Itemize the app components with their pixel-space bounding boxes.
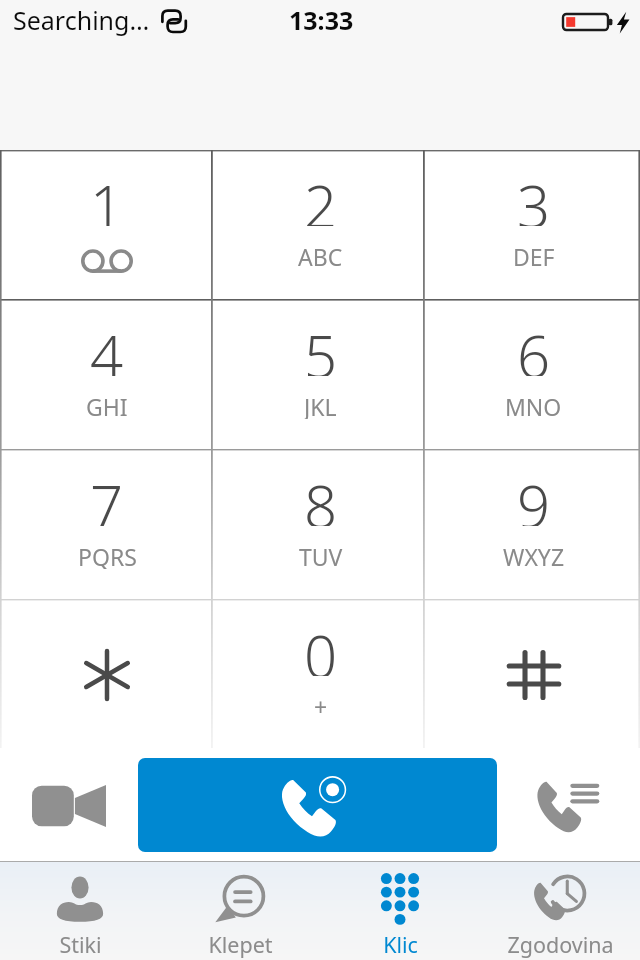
button[interactable] <box>0 600 214 750</box>
staticText: DEF <box>513 241 555 269</box>
button[interactable]: Stiki <box>0 862 160 960</box>
button[interactable]: 7 <box>0 450 214 600</box>
staticText: 5 <box>304 316 338 376</box>
button[interactable]: 9 <box>427 450 640 600</box>
button[interactable]: 8 <box>214 450 427 600</box>
button[interactable]: 4 <box>0 300 214 450</box>
staticText: 9 <box>517 466 551 526</box>
staticText: 3 <box>517 166 551 226</box>
staticText: + <box>314 691 328 719</box>
staticText: PQRS <box>78 541 137 569</box>
staticText: 1 <box>90 166 124 226</box>
staticText: 7 <box>90 466 124 526</box>
button[interactable]: Zgodovina <box>480 862 640 960</box>
staticText: 8 <box>304 466 338 526</box>
button[interactable]: Klic <box>320 862 480 960</box>
button[interactable]: 0 <box>214 600 427 750</box>
staticText: ABC <box>298 241 343 269</box>
staticText: TUV <box>299 541 343 569</box>
button[interactable]: Call <box>138 758 497 852</box>
staticText: GHI <box>86 391 128 419</box>
staticText: 6 <box>517 316 551 376</box>
staticText: Searching… <box>13 3 150 37</box>
button[interactable]: 6 <box>427 300 640 450</box>
button[interactable]: 3 <box>427 150 640 300</box>
staticText: JKL <box>304 391 337 419</box>
button[interactable]: 2 <box>214 150 427 300</box>
staticText: WXYZ <box>503 541 565 569</box>
button[interactable]: Recent calls <box>497 750 640 861</box>
button[interactable]: Klepet <box>160 862 320 960</box>
button[interactable] <box>427 600 640 750</box>
staticText: Zgodovina <box>507 930 614 958</box>
staticText: MNO <box>505 391 562 419</box>
staticText: 13:33 <box>289 3 354 37</box>
staticText: 0 <box>304 616 338 676</box>
button[interactable]: 1 <box>0 150 214 300</box>
staticText: 2 <box>304 166 338 226</box>
staticText: 4 <box>90 316 124 376</box>
button[interactable]: 5 <box>214 300 427 450</box>
staticText: Klepet <box>208 930 273 958</box>
staticText: Stiki <box>59 930 102 958</box>
staticText: Klic <box>383 930 418 958</box>
button[interactable]: Video call <box>0 750 138 861</box>
